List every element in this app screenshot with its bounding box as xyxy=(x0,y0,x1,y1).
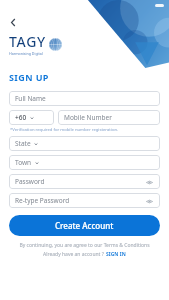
button[interactable]: Back xyxy=(3,12,23,32)
staticText: TAGY xyxy=(9,32,46,51)
button[interactable]: Show password xyxy=(145,197,153,205)
staticText: Already have an account ? xyxy=(43,251,106,258)
button[interactable]: Password xyxy=(9,174,160,189)
staticText: Re-type Password xyxy=(15,196,70,205)
staticText: Full Name xyxy=(15,94,46,103)
button[interactable]: Mobile Number xyxy=(58,110,160,125)
staticText: *Verification required for mobile number… xyxy=(10,127,119,133)
button[interactable]: Full Name xyxy=(9,91,160,106)
staticText: State xyxy=(15,139,31,148)
button[interactable]: +60 xyxy=(9,110,54,125)
staticText: Mobile Number xyxy=(64,113,112,122)
staticText: +60 xyxy=(15,113,27,122)
staticText: Town xyxy=(15,158,32,167)
staticText: Create Account xyxy=(55,220,114,231)
staticText: Harmonising Digital xyxy=(9,51,43,56)
button[interactable]: Town xyxy=(9,155,160,170)
button[interactable]: SIGN IN xyxy=(106,251,126,258)
staticText: SIGN UP xyxy=(9,71,49,83)
button[interactable]: State xyxy=(9,136,160,151)
button[interactable]: Show password xyxy=(145,178,153,186)
staticText: Password xyxy=(15,177,45,186)
button[interactable]: Re-type Password xyxy=(9,193,160,208)
staticText: By continuing, you are agree to our Term… xyxy=(0,242,169,249)
button[interactable]: Create Account xyxy=(9,215,160,236)
staticText: SIGN IN xyxy=(106,251,126,258)
